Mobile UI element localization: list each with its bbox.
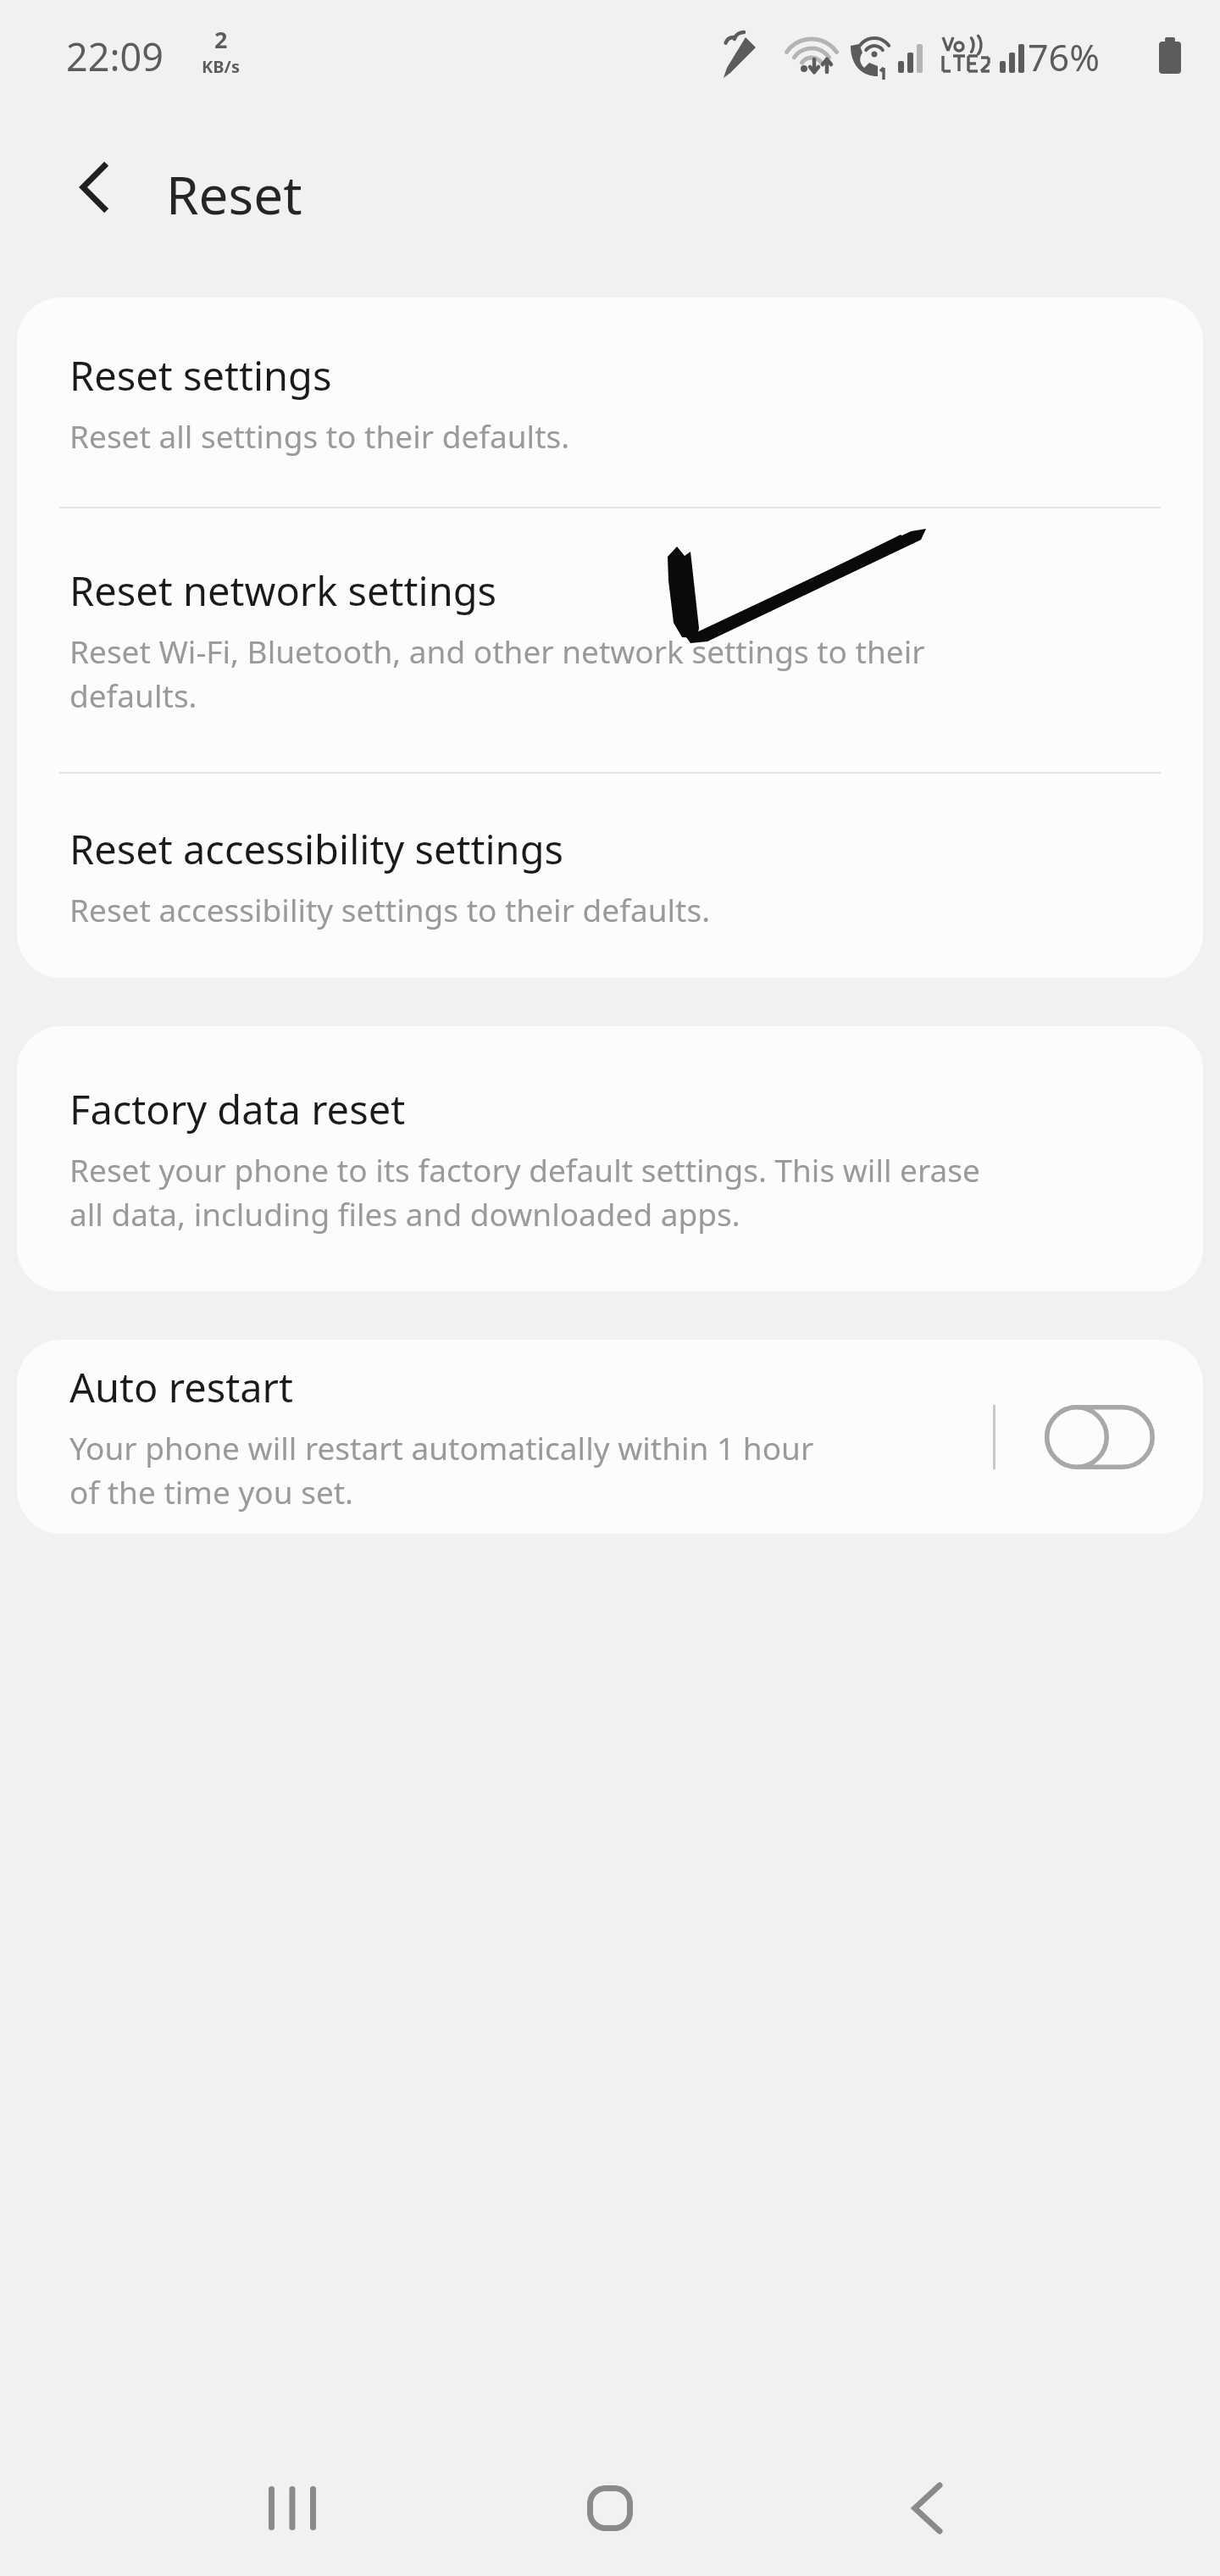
button[interactable]: Auto restart: [17, 1340, 993, 1534]
button[interactable]: Reset accessibility settings: [17, 774, 1203, 978]
staticText: Auto restart: [69, 1360, 293, 1414]
staticText: KB/s: [202, 55, 240, 78]
staticText: Factory data reset: [69, 1082, 406, 1136]
staticText: 76%: [1028, 32, 1100, 82]
staticText: Reset network settings: [69, 563, 497, 618]
button[interactable]: Recent apps: [191, 2440, 394, 2576]
button[interactable]: Back: [826, 2440, 1029, 2576]
staticText: Reset all settings to their defaults.: [69, 414, 570, 457]
staticText: Reset accessibility settings to their de…: [69, 888, 711, 930]
button[interactable]: Reset network settings: [17, 508, 1203, 772]
staticText: Reset: [166, 158, 302, 230]
staticText: Reset your phone to its factory default …: [69, 1148, 980, 1235]
button[interactable]: Home: [508, 2440, 712, 2576]
button[interactable]: Factory data reset: [17, 1026, 1203, 1291]
staticText: Reset accessibility settings: [69, 822, 564, 876]
button[interactable]: Reset settings: [17, 297, 1203, 507]
staticText: Reset settings: [69, 348, 332, 402]
staticText: 2: [214, 24, 228, 55]
button[interactable]: Factory data reset: [17, 1026, 1203, 1291]
staticText: 22:09: [66, 31, 164, 82]
staticText: Reset Wi-Fi, Bluetooth, and other networ…: [69, 630, 925, 717]
button[interactable]: Navigate up: [44, 136, 146, 238]
staticText: Your phone will restart automatically wi…: [69, 1426, 814, 1513]
button[interactable]: Auto restart toggle: [995, 1340, 1203, 1534]
